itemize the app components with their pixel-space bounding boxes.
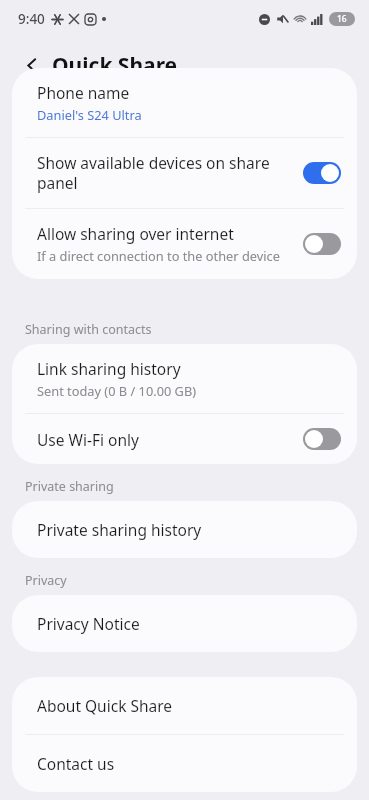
staticText: Quick Share [52, 51, 178, 80]
button[interactable]: Show available devices on share panel [12, 138, 357, 208]
button[interactable]: Use Wi-Fi only [12, 414, 357, 464]
staticText: 16 [337, 13, 347, 25]
staticText: Sharing with contacts [25, 321, 152, 338]
button[interactable]: Phone name [12, 68, 357, 137]
button[interactable]: Allow sharing over internet [12, 209, 357, 279]
staticText: Show available devices on share panel [37, 152, 289, 194]
staticText: Contact us [37, 753, 115, 774]
button[interactable]: Contact us [12, 735, 357, 792]
staticText: Private sharing [25, 478, 114, 495]
staticText: Use Wi-Fi only [37, 429, 139, 450]
staticText: If a direct connection to the other devi… [37, 247, 289, 265]
staticText: Privacy [25, 572, 67, 589]
staticText: Phone name [37, 82, 130, 103]
button[interactable]: About Quick Share [12, 677, 357, 734]
button[interactable]: Back [18, 51, 46, 79]
button[interactable] [303, 233, 341, 255]
staticText: About Quick Share [37, 695, 173, 716]
button[interactable]: Private sharing history [12, 501, 357, 558]
staticText: Link sharing history [37, 358, 181, 379]
button[interactable]: Privacy Notice [12, 595, 357, 652]
staticText: Daniel's S24 Ultra [37, 106, 142, 123]
staticText: Allow sharing over internet [37, 223, 234, 244]
button[interactable] [303, 428, 341, 450]
staticText: 9:40 [18, 10, 45, 28]
button[interactable] [303, 162, 341, 184]
staticText: Private sharing history [37, 519, 202, 540]
staticText: Sent today (0 B / 10.00 GB) [37, 382, 197, 399]
staticText: Privacy Notice [37, 613, 140, 634]
button[interactable]: Link sharing history [12, 344, 357, 413]
